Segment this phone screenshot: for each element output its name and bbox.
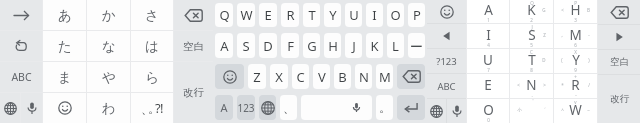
button[interactable]: Space [301, 95, 372, 120]
staticText: 空白 [183, 40, 204, 53]
button[interactable]: Emoji [427, 0, 466, 23]
button[interactable]: Language [0, 93, 20, 123]
button[interactable]: K [510, 0, 553, 23]
button[interactable]: 改行 [598, 75, 640, 123]
button[interactable]: あ [43, 0, 86, 30]
button[interactable]: Y [324, 3, 341, 27]
button[interactable]: Backspace [174, 0, 213, 30]
button[interactable]: Backspace [397, 64, 425, 89]
button[interactable]: 123 [237, 95, 255, 120]
button[interactable]: R [554, 74, 597, 98]
button[interactable]: A [215, 95, 233, 120]
button[interactable]: V [313, 64, 330, 89]
button[interactable]: B [334, 64, 351, 89]
button[interactable]: F [281, 33, 299, 58]
button[interactable]: ゜ [510, 99, 553, 123]
button[interactable]: Y [554, 49, 597, 73]
button[interactable]: 、 [131, 93, 173, 123]
button[interactable]: I [366, 3, 383, 27]
button[interactable]: Emoji [215, 64, 244, 89]
button[interactable]: R [281, 3, 299, 27]
button[interactable]: ABC [427, 74, 466, 98]
button[interactable]: S [237, 33, 255, 58]
staticText: や [102, 69, 116, 86]
button[interactable]: な [87, 31, 130, 61]
button[interactable]: E [259, 3, 277, 27]
staticText: M [569, 26, 582, 44]
staticText: 小 [517, 107, 522, 113]
button[interactable]: ?123 [427, 49, 466, 73]
button[interactable]: 改行 [174, 62, 213, 123]
button[interactable]: X [270, 64, 288, 89]
button[interactable]: N [355, 64, 372, 89]
button[interactable]: Next [598, 25, 640, 49]
button[interactable]: C [292, 64, 309, 89]
button[interactable]: は [131, 31, 173, 61]
button[interactable]: O [387, 3, 404, 27]
button[interactable]: A [467, 0, 509, 23]
button[interactable]: U [467, 49, 509, 73]
button[interactable]: ら [131, 62, 173, 92]
button[interactable]: W [554, 99, 597, 123]
staticText: > [543, 82, 546, 88]
staticText: O [483, 101, 494, 119]
button[interactable]: や [87, 62, 130, 92]
button[interactable]: Voice input [447, 99, 466, 123]
button[interactable]: ー [408, 33, 425, 58]
button[interactable]: Voice input [21, 93, 42, 123]
button[interactable]: Q [215, 3, 233, 27]
button[interactable]: S [510, 24, 553, 48]
button[interactable]: た [43, 31, 86, 61]
button[interactable]: O [467, 99, 509, 123]
button[interactable]: I [467, 24, 509, 48]
button[interactable]: N [510, 74, 553, 98]
button[interactable]: Enter [397, 95, 425, 120]
button[interactable]: Next [0, 0, 42, 30]
button[interactable]: P [408, 3, 425, 27]
button[interactable]: Z [248, 64, 266, 89]
button[interactable]: T [303, 3, 320, 27]
button[interactable]: J [345, 33, 362, 58]
staticText: K [527, 1, 536, 19]
staticText: 4 [487, 42, 490, 48]
staticText: 5 [530, 42, 533, 48]
button[interactable] [43, 93, 86, 123]
button[interactable]: わ [87, 93, 130, 123]
button[interactable]: T [510, 49, 553, 73]
button[interactable]: Language [427, 99, 446, 123]
button[interactable]: ABC [0, 62, 42, 92]
button[interactable]: W [237, 3, 255, 27]
button[interactable]: Undo [0, 31, 42, 61]
staticText: ら [145, 69, 159, 86]
button[interactable]: M [376, 64, 393, 89]
button[interactable]: Backspace [598, 0, 640, 24]
staticText: - [588, 32, 590, 38]
button[interactable]: K [366, 33, 383, 58]
button[interactable]: 、 [280, 95, 297, 120]
button[interactable]: か [87, 0, 130, 30]
button[interactable]: さ [131, 0, 173, 30]
staticText: Y [572, 51, 580, 69]
button[interactable]: Previous [427, 24, 466, 48]
button[interactable]: M [554, 24, 597, 48]
staticText: D [542, 57, 546, 63]
staticText: 7 [487, 67, 490, 73]
button[interactable]: ま [43, 62, 86, 92]
button[interactable]: L [387, 33, 404, 58]
button[interactable]: G [303, 33, 320, 58]
button[interactable]: U [345, 3, 362, 27]
staticText: Y [329, 6, 337, 24]
button[interactable]: A [215, 33, 233, 58]
button[interactable]: 。 [376, 95, 393, 120]
button[interactable]: D [259, 33, 277, 58]
staticText: ~ [587, 107, 590, 113]
staticText: V [318, 68, 326, 86]
button[interactable]: 空白 [598, 50, 640, 74]
button[interactable]: E [467, 74, 509, 98]
button[interactable]: Language [259, 95, 276, 120]
staticText: W [240, 6, 253, 24]
staticText: Z [543, 32, 546, 38]
button[interactable]: H [324, 33, 341, 58]
button[interactable]: 空白 [174, 31, 213, 61]
button[interactable]: H [554, 0, 597, 23]
